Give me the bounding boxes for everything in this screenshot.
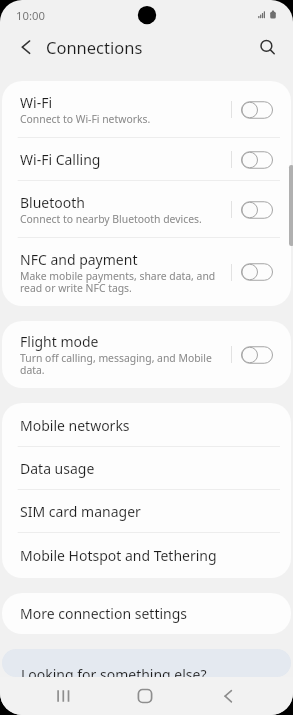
button[interactable]: Wi-Fi Calling [2,138,291,181]
button[interactable]: Data usage [2,447,291,490]
staticText: Make mobile payments, share data, and re… [20,269,221,295]
staticText: Flight mode [20,332,99,351]
staticText: More connection settings [20,604,188,623]
button[interactable]: Bluetooth [2,181,291,238]
button[interactable]: Flight mode [2,321,291,388]
button[interactable]: Recents [40,677,82,715]
button[interactable]: Mobile Hotspot and Tethering [2,533,291,578]
staticText: Bluetooth [20,193,85,212]
staticText: Mobile Hotspot and Tethering [20,546,217,565]
button[interactable]: Toggle [240,199,274,221]
button[interactable]: More connection settings [2,593,291,634]
button[interactable]: Toggle [240,99,274,121]
button[interactable]: SIM card manager [2,490,291,533]
staticText: Wi-Fi [20,93,53,112]
button[interactable]: Back [7,31,44,68]
staticText: Looking for something else? [21,665,207,677]
button[interactable]: Mobile networks [2,403,291,447]
staticText: Connect to Wi-Fi networks. [20,112,151,126]
staticText: Wi-Fi Calling [20,150,101,169]
button[interactable]: Wi-Fi [2,81,291,138]
button[interactable]: NFC and payment [2,238,291,306]
button[interactable]: Looking for something else? [2,649,291,677]
staticText: 10:00 [16,8,45,23]
button[interactable]: Toggle [240,344,274,366]
staticText: Mobile networks [20,416,130,435]
staticText: Connect to nearby Bluetooth devices. [20,212,202,226]
button[interactable]: Search [248,31,285,68]
staticText: SIM card manager [20,502,141,521]
staticText: Data usage [20,459,95,478]
staticText: Connections [46,36,143,58]
staticText: NFC and payment [20,250,138,269]
button[interactable]: Home [124,677,166,715]
staticText: Turn off calling, messaging, and Mobile … [20,351,221,377]
button[interactable]: Toggle [240,149,274,171]
button[interactable]: Toggle [240,261,274,283]
button[interactable]: Back [208,677,250,715]
